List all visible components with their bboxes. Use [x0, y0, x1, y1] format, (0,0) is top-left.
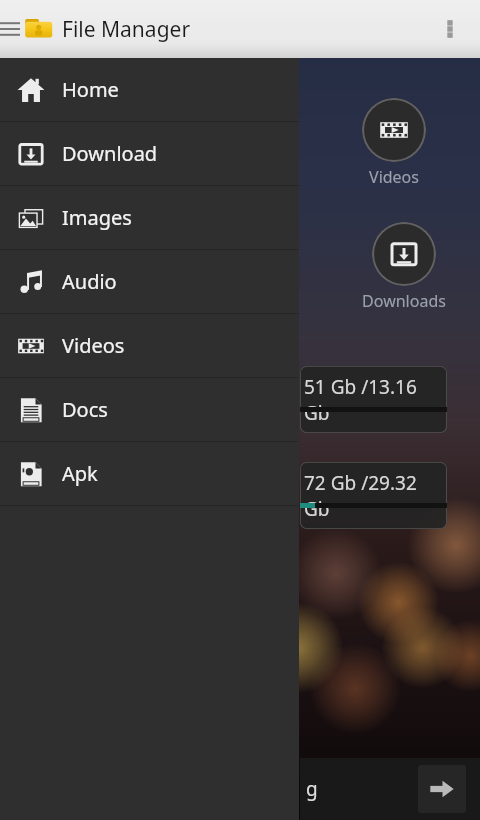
button[interactable]: Download	[0, 122, 299, 185]
staticText: Audio	[62, 268, 117, 295]
button[interactable]: Images	[0, 186, 299, 249]
staticText: Videos	[369, 166, 419, 188]
button[interactable]: 72 Gb /29.32 Gb	[300, 462, 447, 529]
staticText: Downloads	[362, 290, 446, 312]
staticText: 72 Gb /29.32 Gb	[304, 470, 447, 522]
button[interactable]: Open navigation drawer	[0, 13, 26, 45]
button[interactable]: More options	[428, 7, 472, 51]
staticText: 51 Gb /13.16 Gb	[304, 374, 447, 426]
staticText: Apk	[62, 460, 98, 487]
button[interactable]: Docs	[0, 378, 299, 441]
staticText: Videos	[62, 332, 125, 359]
button[interactable]: Videos	[0, 314, 299, 377]
button[interactable]: Downloads	[372, 222, 436, 286]
staticText: File Manager	[62, 15, 191, 44]
staticText: Download	[62, 140, 158, 167]
button[interactable]: 51 Gb /13.16 Gb	[300, 366, 447, 433]
button[interactable]: Next	[418, 765, 466, 813]
staticText: g	[306, 776, 318, 802]
button[interactable]: Videos	[362, 98, 426, 162]
staticText: Home	[62, 76, 119, 103]
staticText: Images	[62, 204, 132, 231]
button[interactable]: Apk	[0, 442, 299, 505]
button[interactable]: Home	[0, 58, 299, 121]
button[interactable]: Audio	[0, 250, 299, 313]
staticText: Docs	[62, 396, 108, 423]
